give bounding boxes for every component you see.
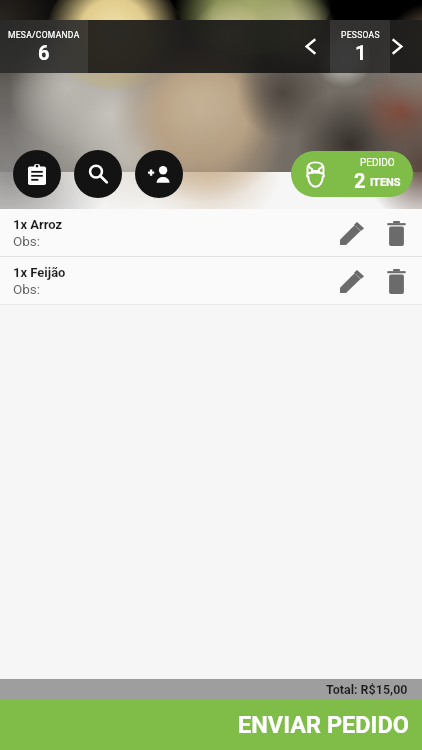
button[interactable]: Editar	[330, 211, 374, 255]
staticText: Total: R$15,00	[326, 682, 408, 697]
button[interactable]: MESA/COMANDA	[0, 20, 88, 73]
button[interactable]: Comandas	[13, 150, 61, 198]
staticText: 6	[38, 41, 50, 64]
staticText: 1	[355, 41, 367, 64]
button[interactable]: PEDIDO	[291, 151, 413, 197]
staticText: PESSOAS	[341, 30, 380, 40]
button[interactable]: PESSOAS	[330, 20, 390, 73]
staticText: Obs:	[13, 233, 41, 249]
button[interactable]: Proximo	[383, 20, 411, 73]
button[interactable]: Editar	[330, 259, 374, 303]
staticText: ENVIAR PEDIDO	[238, 711, 409, 739]
button[interactable]: ENVIAR PEDIDO	[0, 700, 422, 750]
staticText: 1x Feijão	[13, 265, 66, 280]
staticText: ITENS	[370, 176, 401, 189]
button[interactable]: 1x Arroz	[0, 209, 422, 256]
button[interactable]: Excluir	[374, 211, 418, 255]
button[interactable]: Buscar	[74, 150, 122, 198]
staticText: Obs:	[13, 281, 41, 297]
button[interactable]: Adicionar pessoa	[135, 150, 183, 198]
staticText: 2	[354, 169, 366, 192]
button[interactable]: 1x Feijão	[0, 257, 422, 304]
staticText: PEDIDO	[360, 157, 395, 169]
staticText: MESA/COMANDA	[8, 30, 80, 40]
staticText: 1x Arroz	[13, 217, 63, 232]
button[interactable]: Anterior	[296, 20, 324, 73]
button[interactable]: Excluir	[374, 259, 418, 303]
